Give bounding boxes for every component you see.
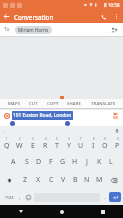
button[interactable]: TRANSLATE (90, 100, 117, 108)
staticText: M (96, 175, 103, 185)
button[interactable]: L (105, 153, 117, 171)
staticText: 4 (45, 137, 47, 141)
button[interactable]: F (45, 153, 57, 171)
staticText: V (61, 175, 66, 185)
staticText: 6 (68, 137, 70, 141)
staticText: , (3, 128, 5, 133)
button[interactable]: 3 (26, 134, 39, 153)
button[interactable]: ?123 (2, 189, 16, 205)
staticText: R (43, 141, 48, 151)
button[interactable]: 101 Euston Road, London (12, 111, 109, 120)
staticText: Z (23, 175, 28, 185)
staticText: 1 (6, 137, 8, 141)
button[interactable]: Call (97, 10, 110, 23)
button[interactable]: MAPS (7, 100, 22, 108)
button[interactable]: S (20, 153, 33, 171)
staticText: T (55, 141, 59, 151)
staticText: 8 (93, 137, 95, 141)
button[interactable]: Navigate up (0, 10, 13, 23)
staticText: 2 (19, 137, 21, 141)
staticText: ?123 (5, 195, 14, 200)
staticText: 7 (80, 137, 82, 141)
button[interactable]: CUT (28, 100, 39, 108)
staticText: SHARE (67, 101, 82, 107)
button[interactable]: H (69, 153, 81, 171)
button[interactable]: , (16, 189, 24, 205)
button[interactable]: J (81, 153, 93, 171)
button[interactable]: Emoji (24, 189, 33, 205)
button[interactable]: 5 (51, 134, 63, 153)
staticText: Y (67, 141, 71, 151)
staticText: F (49, 157, 53, 167)
button[interactable]: More options (110, 10, 123, 23)
staticText: Q (4, 141, 10, 151)
button[interactable]: 1 (0, 134, 13, 153)
button[interactable]: B (69, 171, 81, 189)
staticText: , (19, 194, 21, 201)
button[interactable]: Recents (82, 205, 123, 218)
staticText: 9 (104, 137, 106, 141)
staticText: S (25, 157, 29, 167)
button[interactable]: COPY (46, 100, 60, 108)
staticText: CUT (29, 101, 38, 107)
staticText: O (102, 141, 108, 151)
button[interactable]: G (57, 153, 69, 171)
button[interactable]: Add recipient (108, 24, 119, 35)
button[interactable]: Home (41, 205, 82, 218)
staticText: TRANSLATE (91, 101, 116, 107)
staticText: W (16, 141, 23, 151)
staticText: COPY (47, 101, 59, 107)
staticText: 5 (56, 137, 58, 141)
staticText: C (49, 175, 54, 185)
button[interactable]: Enter (109, 192, 121, 202)
button[interactable]: C (45, 171, 57, 189)
staticText: 10:58 (108, 2, 120, 8)
button[interactable]: Back (0, 205, 41, 218)
button[interactable]: 0 (111, 134, 123, 153)
button[interactable]: Z (19, 171, 32, 189)
staticText: I (92, 141, 95, 151)
button[interactable]: D (33, 153, 45, 171)
staticText: MAPS (8, 101, 21, 107)
staticText: G (60, 157, 66, 167)
staticText: U (78, 141, 84, 151)
button[interactable]: Backspace (105, 171, 123, 189)
staticText: L (109, 157, 113, 167)
staticText: A (11, 157, 16, 167)
button[interactable]: X (32, 171, 45, 189)
staticText: 3 (32, 137, 34, 141)
staticText: 101 Euston Road, London (13, 112, 72, 119)
button[interactable]: 7 (75, 134, 87, 153)
button[interactable]: Miriam Harris (15, 26, 52, 34)
button[interactable]: M (93, 171, 105, 189)
button[interactable]: 2 (13, 134, 26, 153)
staticText: J (86, 157, 88, 167)
button[interactable]: Send (110, 110, 121, 121)
button[interactable]: 8 (87, 134, 99, 153)
staticText: To (4, 26, 10, 33)
staticText: P (115, 141, 120, 151)
button[interactable]: N (81, 171, 93, 189)
staticText: X (36, 175, 41, 185)
button[interactable]: 4 (39, 134, 51, 153)
button[interactable]: V (57, 171, 69, 189)
staticText: Miriam Harris (18, 27, 49, 33)
staticText: 0 (117, 137, 119, 141)
staticText: N (84, 175, 90, 185)
staticText: SMS (113, 116, 119, 120)
staticText: Conversation (14, 13, 97, 21)
button[interactable]: Attach (2, 111, 11, 120)
button[interactable]: Shift (0, 171, 19, 189)
button[interactable]: K (93, 153, 105, 171)
staticText: D (36, 157, 42, 167)
staticText: . (104, 194, 106, 201)
button[interactable]: A (7, 153, 20, 171)
staticText: H (72, 157, 78, 167)
button[interactable]: 6 (63, 134, 75, 153)
button[interactable]: . (101, 189, 109, 205)
button[interactable]: Voice input (113, 127, 120, 134)
button[interactable]: 9 (99, 134, 111, 153)
staticText: E (31, 141, 35, 151)
button[interactable]: SHARE (66, 100, 83, 108)
